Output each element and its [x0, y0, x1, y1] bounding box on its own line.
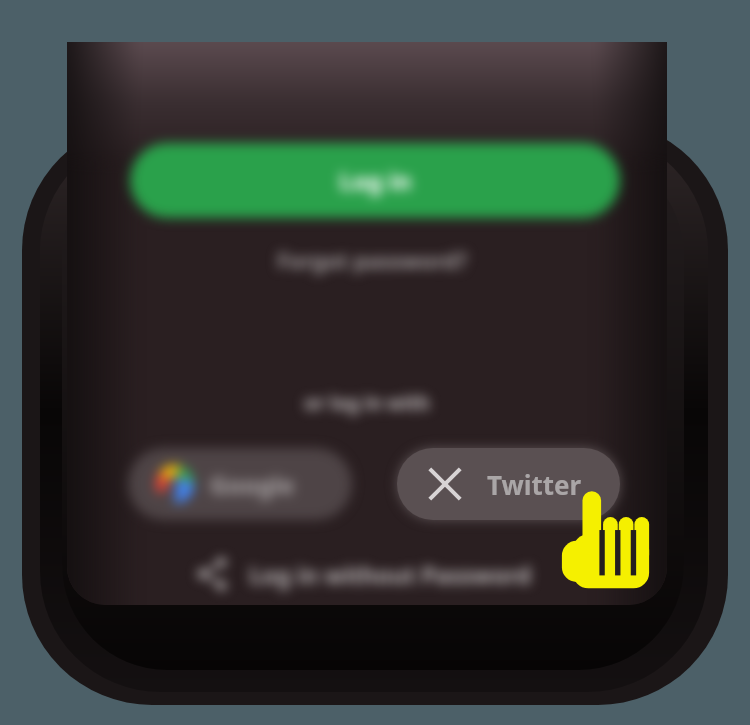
staticText: Log in	[339, 164, 412, 197]
button[interactable]: Forgot password?	[252, 239, 492, 281]
button[interactable]: Log in without Password	[195, 550, 531, 598]
button[interactable]: Twitter	[397, 448, 620, 520]
staticText: Google	[210, 468, 295, 501]
staticText: Forgot password?	[277, 245, 467, 275]
staticText: Twitter	[487, 467, 582, 502]
button[interactable]: Log in	[130, 143, 620, 218]
staticText: Log in without Password	[249, 559, 531, 590]
button[interactable]: Google	[128, 448, 352, 520]
staticText: or log in with	[304, 390, 430, 416]
other: Pointer	[557, 489, 655, 597]
